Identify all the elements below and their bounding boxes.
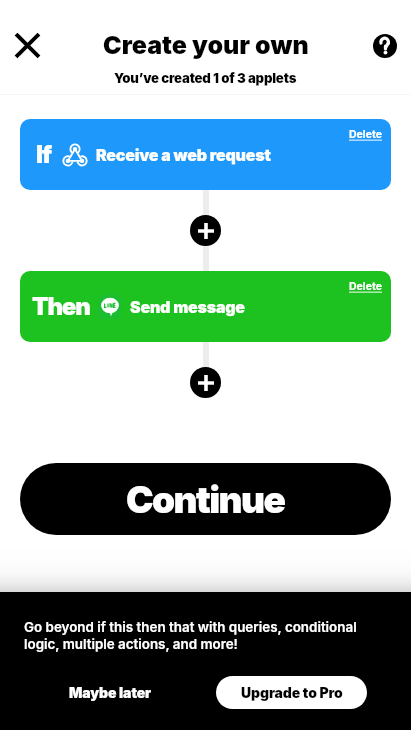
staticText: Delete: [349, 128, 382, 141]
button[interactable]: Delete: [346, 280, 385, 293]
button[interactable]: Then: [20, 271, 391, 342]
staticText: Continue: [126, 477, 285, 522]
staticText: Then: [32, 292, 90, 321]
staticText: Maybe later: [69, 684, 152, 701]
button[interactable]: Close: [5, 23, 49, 67]
button[interactable]: Add: [190, 215, 221, 246]
staticText: If: [36, 140, 51, 169]
button[interactable]: Continue: [20, 463, 391, 535]
button[interactable]: If: [20, 119, 391, 190]
button[interactable]: Delete: [346, 128, 385, 141]
staticText: Send message: [130, 297, 245, 316]
staticText: Receive a web request: [96, 145, 271, 164]
staticText: Upgrade to Pro: [241, 684, 343, 701]
button[interactable]: Help: [363, 24, 407, 68]
button[interactable]: Maybe later: [42, 676, 179, 709]
staticText: Create your own: [103, 30, 309, 60]
staticText: You’ve created 1 of 3 applets: [114, 70, 297, 86]
button[interactable]: Add: [190, 367, 221, 398]
button[interactable]: Upgrade to Pro: [216, 676, 367, 709]
staticText: Delete: [349, 280, 382, 293]
staticText: Go beyond if this then that with queries…: [24, 619, 357, 652]
